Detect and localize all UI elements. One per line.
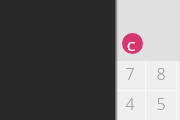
button[interactable]: 4: [115, 91, 145, 120]
staticText: 5: [156, 93, 166, 115]
staticText: 4: [125, 93, 135, 115]
staticText: 8: [156, 63, 166, 85]
staticText: C: [127, 37, 136, 54]
button[interactable]: Clear: [122, 33, 143, 54]
staticText: 7: [125, 63, 135, 85]
button[interactable]: 5: [146, 91, 176, 120]
button[interactable]: 7: [115, 61, 145, 90]
button[interactable]: 8: [146, 61, 176, 90]
